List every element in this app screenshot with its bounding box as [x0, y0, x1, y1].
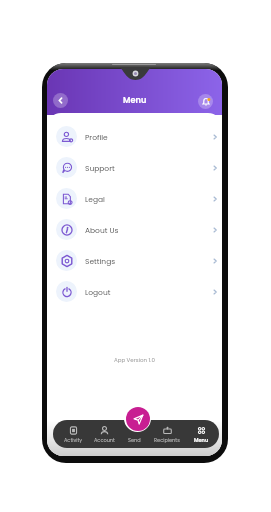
button[interactable]: Activity — [57, 421, 89, 448]
button[interactable]: Back — [53, 93, 68, 108]
staticText: Settings — [85, 256, 116, 266]
staticText: Send — [128, 437, 141, 444]
button[interactable]: Send money — [126, 407, 150, 431]
staticText: Activity — [64, 437, 83, 444]
staticText: App Version 1.0 — [114, 356, 155, 364]
button[interactable]: About Us — [47, 214, 222, 245]
button[interactable]: Settings — [47, 245, 222, 276]
staticText: Recipients — [154, 437, 180, 444]
staticText: Support — [85, 163, 115, 173]
button[interactable]: Support — [47, 152, 222, 183]
staticText: Logout — [85, 287, 111, 297]
button[interactable]: Menu — [185, 421, 217, 448]
staticText: Account — [94, 437, 115, 444]
button[interactable]: Logout — [47, 276, 222, 307]
staticText: Menu — [194, 437, 209, 444]
button[interactable]: Send — [118, 421, 150, 448]
staticText: About Us — [85, 225, 119, 235]
button[interactable]: Recipients — [151, 421, 183, 448]
button[interactable]: Notifications — [198, 94, 213, 109]
button[interactable]: Legal — [47, 183, 222, 214]
staticText: Profile — [85, 132, 108, 142]
button[interactable]: Profile — [47, 121, 222, 152]
staticText: Legal — [85, 194, 105, 204]
button[interactable]: Account — [88, 421, 120, 448]
staticText: Menu — [123, 94, 147, 105]
